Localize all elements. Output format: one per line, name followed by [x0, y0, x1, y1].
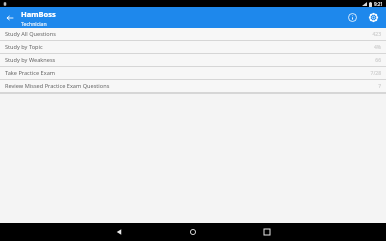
button[interactable]: Back [0, 7, 20, 28]
staticText: 423 [372, 31, 381, 38]
button[interactable]: Study All Questions [0, 28, 386, 40]
staticText: HamBoss [21, 9, 56, 19]
staticText: Technician [21, 20, 47, 27]
staticText: 4% [373, 44, 381, 51]
staticText: Study by Topic [5, 43, 373, 51]
button[interactable]: Take Practice Exam [0, 67, 386, 79]
staticText: Review Missed Practice Exam Questions [5, 82, 378, 90]
staticText: 66 [375, 57, 381, 64]
button[interactable]: Study by Weakness [0, 54, 386, 66]
button[interactable]: Back [110, 223, 128, 241]
button[interactable]: Recent apps [258, 223, 276, 241]
staticText: Study All Questions [5, 30, 372, 38]
staticText: 7 [378, 83, 381, 90]
button[interactable]: Settings [363, 7, 384, 28]
staticText: 9:21 [374, 1, 383, 7]
button[interactable]: Home [184, 223, 202, 241]
staticText: Take Practice Exam [5, 69, 370, 77]
staticText: 7/28 [370, 70, 381, 77]
button[interactable]: Study by Topic [0, 41, 386, 53]
staticText: Study by Weakness [5, 56, 375, 64]
button[interactable]: Info [342, 7, 363, 28]
button[interactable]: Review Missed Practice Exam Questions [0, 80, 386, 92]
